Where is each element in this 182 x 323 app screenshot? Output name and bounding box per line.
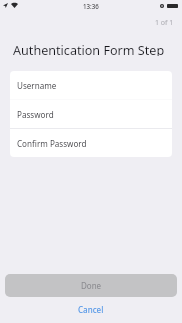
other: Wi-Fi bbox=[11, 3, 18, 8]
other: Location services active bbox=[3, 3, 8, 8]
button[interactable]: Done bbox=[5, 274, 177, 297]
staticText: Password bbox=[17, 109, 54, 120]
other: Battery full bbox=[167, 4, 178, 8]
staticText: Confirm Password bbox=[17, 138, 87, 149]
staticText: Done bbox=[81, 280, 102, 291]
button[interactable]: Confirm Password bbox=[10, 129, 172, 157]
other: Alarm set bbox=[160, 4, 164, 8]
button[interactable]: Password bbox=[10, 100, 172, 128]
button[interactable]: Cancel bbox=[68, 302, 114, 317]
button[interactable]: Username bbox=[10, 71, 172, 99]
staticText: 1 of 1 bbox=[155, 18, 174, 28]
staticText: Authentication Form Step bbox=[13, 42, 165, 56]
staticText: 13:36 bbox=[83, 2, 99, 10]
staticText: Cancel bbox=[78, 304, 104, 315]
staticText: Username bbox=[17, 80, 57, 91]
